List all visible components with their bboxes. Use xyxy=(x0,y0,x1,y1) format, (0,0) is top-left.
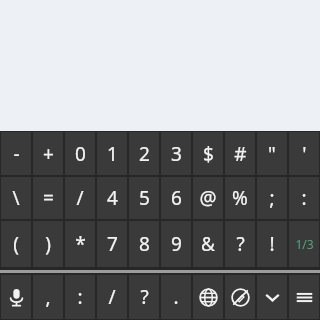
staticText: ? xyxy=(140,284,149,310)
button[interactable]: + xyxy=(33,132,63,175)
staticText: ? xyxy=(236,231,245,257)
button[interactable]: Hide keyboard xyxy=(257,275,287,319)
button[interactable]: / xyxy=(65,177,95,219)
button[interactable]: 5 xyxy=(129,177,159,219)
staticText: + xyxy=(43,141,54,167)
staticText: * xyxy=(75,231,86,257)
button[interactable]: ) xyxy=(33,221,63,267)
staticText: \ xyxy=(12,185,20,211)
button[interactable]: " xyxy=(257,132,287,175)
staticText: ; xyxy=(269,185,275,211)
staticText: 1/3 xyxy=(295,236,314,252)
button[interactable]: 7 xyxy=(97,221,127,267)
button[interactable]: Keyboard options xyxy=(289,275,319,319)
staticText: = xyxy=(43,185,54,211)
staticText: ' xyxy=(302,141,307,167)
staticText: $ xyxy=(203,141,214,167)
button[interactable]: $ xyxy=(193,132,223,175)
button[interactable]: ' xyxy=(289,132,319,175)
button[interactable]: - xyxy=(1,132,31,175)
button[interactable]: / xyxy=(97,275,127,319)
staticText: 6 xyxy=(171,185,182,211)
staticText: 3 xyxy=(171,141,182,167)
button[interactable]: : xyxy=(65,275,95,319)
button[interactable]: 4 xyxy=(97,177,127,219)
button[interactable]: * xyxy=(65,221,95,267)
staticText: " xyxy=(268,141,276,167)
button[interactable]: \ xyxy=(1,177,31,219)
button[interactable]: , xyxy=(33,275,63,319)
button[interactable]: 3 xyxy=(161,132,191,175)
staticText: & xyxy=(201,231,215,257)
staticText: 8 xyxy=(139,231,150,257)
button[interactable]: 2 xyxy=(129,132,159,175)
button[interactable]: % xyxy=(225,177,255,219)
button[interactable]: & xyxy=(193,221,223,267)
button[interactable]: = xyxy=(33,177,63,219)
button[interactable]: 0 xyxy=(65,132,95,175)
staticText: . xyxy=(173,284,179,310)
staticText: ) xyxy=(45,231,51,257)
staticText: , xyxy=(45,284,51,310)
staticText: # xyxy=(234,141,247,167)
button[interactable]: ? xyxy=(129,275,159,319)
button[interactable]: Change language xyxy=(193,275,223,319)
staticText: / xyxy=(108,284,116,310)
button[interactable]: ! xyxy=(257,221,287,267)
staticText: ! xyxy=(269,231,275,257)
button[interactable]: ( xyxy=(1,221,31,267)
button[interactable]: ? xyxy=(225,221,255,267)
staticText: % xyxy=(232,185,248,211)
button[interactable]: 1/3 xyxy=(289,221,319,267)
button[interactable]: Disable handwriting xyxy=(225,275,255,319)
staticText: 4 xyxy=(107,185,118,211)
staticText: 9 xyxy=(171,231,182,257)
button[interactable]: # xyxy=(225,132,255,175)
button[interactable]: 1 xyxy=(97,132,127,175)
staticText: @ xyxy=(199,185,217,211)
button[interactable]: Voice input xyxy=(1,275,31,319)
staticText: / xyxy=(76,185,84,211)
button[interactable]: ; xyxy=(257,177,287,219)
staticText: ( xyxy=(13,231,19,257)
staticText: : xyxy=(77,284,83,310)
staticText: : xyxy=(301,185,307,211)
staticText: 0 xyxy=(75,141,86,167)
staticText: 2 xyxy=(139,141,150,167)
staticText: 1 xyxy=(107,141,118,167)
staticText: 7 xyxy=(107,231,118,257)
button[interactable]: 9 xyxy=(161,221,191,267)
button[interactable]: . xyxy=(161,275,191,319)
button[interactable]: : xyxy=(289,177,319,219)
button[interactable]: 6 xyxy=(161,177,191,219)
staticText: - xyxy=(13,141,20,167)
button[interactable]: @ xyxy=(193,177,223,219)
staticText: 5 xyxy=(139,185,150,211)
button[interactable]: 8 xyxy=(129,221,159,267)
